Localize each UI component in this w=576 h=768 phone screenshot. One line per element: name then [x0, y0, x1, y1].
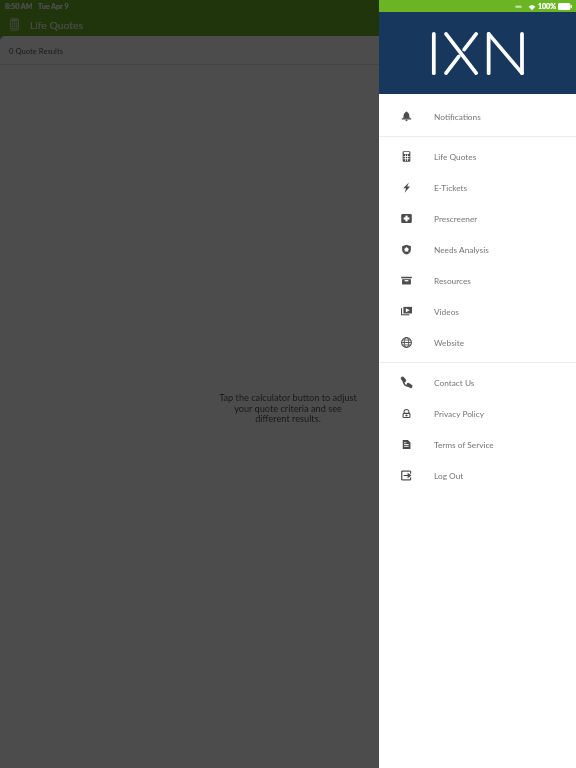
button[interactable]: Needs Analysis — [379, 234, 576, 265]
button[interactable]: Videos — [379, 296, 576, 327]
staticText: 100% — [538, 2, 556, 10]
button[interactable]: Contact Us — [379, 367, 576, 398]
staticText: Website — [434, 338, 465, 348]
button[interactable]: Terms of Service — [379, 429, 576, 460]
staticText: Life Quotes — [434, 152, 477, 162]
button[interactable]: Life Quotes — [379, 141, 576, 172]
button[interactable]: Website — [379, 327, 576, 358]
button[interactable]: Open navigation menu — [10, 13, 19, 36]
staticText: 8:50 AM — [5, 2, 33, 11]
button[interactable]: Notifications — [379, 101, 576, 132]
staticText: Privacy Policy — [434, 409, 485, 419]
staticText: 0 Quote Results — [9, 46, 64, 55]
button[interactable]: Log Out — [379, 460, 576, 491]
staticText: E-Tickets — [434, 183, 468, 193]
staticText: Resources — [434, 276, 471, 286]
button[interactable]: Prescreener — [379, 203, 576, 234]
staticText: Prescreener — [434, 214, 478, 224]
staticText: Videos — [434, 307, 459, 317]
staticText: Life Quotes — [30, 19, 83, 31]
staticText: Tap the calculator button to adjust your… — [219, 392, 357, 424]
button[interactable]: E-Tickets — [379, 172, 576, 203]
staticText: Log Out — [434, 471, 464, 481]
button[interactable]: Privacy Policy — [379, 398, 576, 429]
staticText: Contact Us — [434, 378, 475, 388]
staticText: Tue Apr 9 — [38, 2, 69, 11]
staticText: Terms of Service — [434, 440, 494, 450]
button[interactable]: Resources — [379, 265, 576, 296]
staticText: Notifications — [434, 112, 481, 122]
staticText: Needs Analysis — [434, 245, 489, 255]
